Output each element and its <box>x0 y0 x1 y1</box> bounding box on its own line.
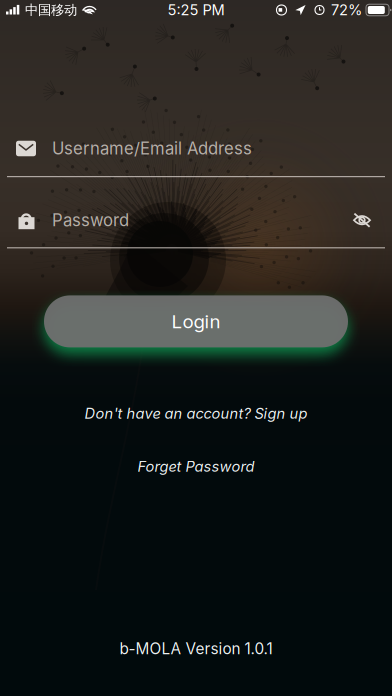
button[interactable]: Show password <box>345 205 379 235</box>
staticText: Don't have an account? Sign up <box>84 404 307 422</box>
button[interactable]: Don't have an account? Sign up <box>0 402 392 424</box>
staticText: Login <box>171 310 220 333</box>
staticText: 中国移动 <box>25 2 77 18</box>
button[interactable]: Forget Password <box>0 455 392 477</box>
staticText: Forget Password <box>137 457 254 475</box>
staticText: 72% <box>331 1 362 19</box>
staticText: 5:25 PM <box>167 1 224 19</box>
button[interactable]: Username/Email Address <box>0 121 392 176</box>
staticText: Username/Email Address <box>52 138 252 159</box>
staticText: Password <box>52 210 129 230</box>
button[interactable]: Login <box>44 295 348 347</box>
staticText: b-MOLA Version 1.0.1 <box>119 639 272 658</box>
